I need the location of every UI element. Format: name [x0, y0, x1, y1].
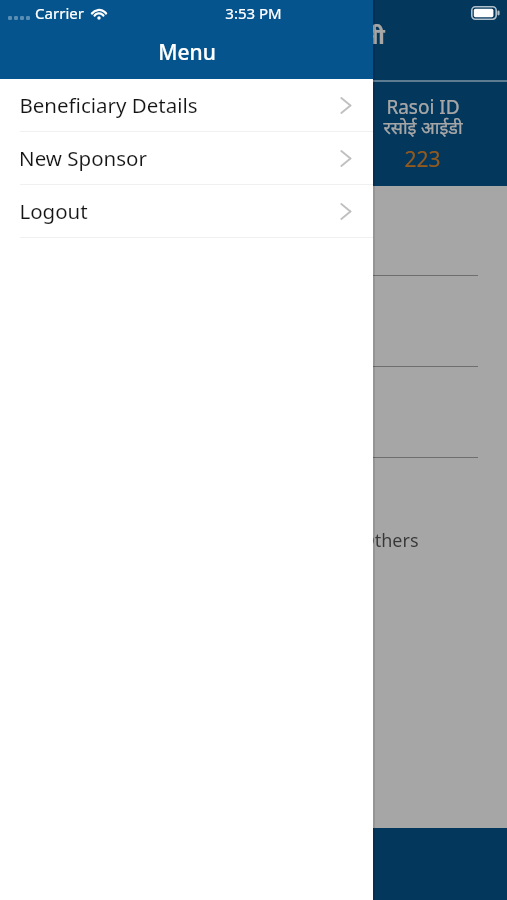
- staticText: रसोई आईडी: [383, 115, 463, 140]
- button[interactable]: [0, 0, 507, 900]
- staticText: Menu: [158, 38, 216, 67]
- staticText: अक्षय पात्र की रसोई की कहानी: [122, 20, 385, 50]
- other: Battery: [471, 6, 500, 20]
- staticText: 223: [404, 145, 441, 174]
- button[interactable]: Logout: [0, 185, 373, 238]
- button[interactable]: Rasoi ID: [338, 82, 507, 186]
- staticText: Rasoi ID: [386, 94, 460, 120]
- staticText: Sponsor: [48, 94, 122, 120]
- staticText: 12: [72, 145, 97, 174]
- staticText: Logout: [19, 197, 88, 225]
- staticText: Meals sponsored by you for the needy Oth…: [33, 528, 419, 553]
- button[interactable]: New Sponsor: [0, 132, 373, 185]
- staticText: 3:53 PM: [225, 3, 282, 23]
- button[interactable]: Beneficiary Details: [0, 79, 373, 132]
- staticText: Carrier: [35, 3, 84, 23]
- button[interactable]: Meals: [169, 82, 338, 186]
- button[interactable]: Sponsor: [0, 82, 169, 186]
- staticText: New Sponsor: [19, 144, 147, 172]
- staticText: Beneficiary Details: [19, 91, 198, 119]
